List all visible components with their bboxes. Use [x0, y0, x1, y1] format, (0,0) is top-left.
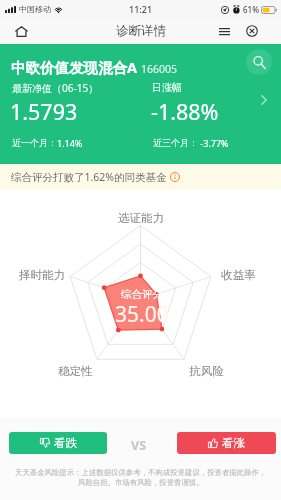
button[interactable]: Close — [241, 20, 263, 42]
button[interactable]: 看跌 — [9, 432, 107, 454]
staticText: 中欧价值发现混合A — [11, 57, 138, 77]
staticText: -1.88% — [151, 97, 219, 126]
staticText: 1.5793 — [10, 97, 78, 126]
staticText: 中国移动 — [19, 4, 51, 14]
staticText: 天天基金风险提示：上述数据仅供参考，不构成投资建议，投资者据此操作， — [15, 468, 267, 477]
staticText: 综合评分 — [121, 288, 163, 301]
button[interactable]: Menu — [213, 20, 235, 42]
staticText: -3.77% — [198, 137, 229, 149]
staticText: VS — [131, 437, 147, 454]
staticText: 35.00 — [115, 300, 169, 329]
staticText: 近一个月： — [12, 137, 57, 148]
staticText: 11:21 — [129, 3, 153, 15]
staticText: 选证能力 — [118, 211, 164, 225]
staticText: 日涨幅 — [152, 81, 182, 94]
staticText: 1.14% — [57, 137, 83, 149]
staticText: 诊断详情 — [116, 23, 166, 39]
staticText: 看跌 — [54, 436, 77, 450]
staticText: 择时能力 — [19, 268, 65, 282]
staticText: 风险自担。市场有风险，投资需谨慎。 — [78, 478, 204, 487]
staticText: 抗风险 — [189, 364, 224, 378]
button[interactable]: Home — [9, 19, 33, 43]
button[interactable]: 看涨 — [177, 432, 276, 454]
staticText: 看涨 — [222, 436, 245, 450]
staticText: 61% — [243, 4, 259, 15]
staticText: 稳定性 — [58, 364, 93, 378]
staticText: 最新净值（06-15） — [12, 81, 99, 95]
button[interactable]: Search — [246, 49, 272, 75]
staticText: 近三个月： — [153, 137, 198, 148]
staticText: 综合评分打败了1.62%的同类基金 — [11, 170, 167, 184]
staticText: 166005 — [141, 62, 178, 76]
staticText: 收益率 — [221, 268, 256, 282]
